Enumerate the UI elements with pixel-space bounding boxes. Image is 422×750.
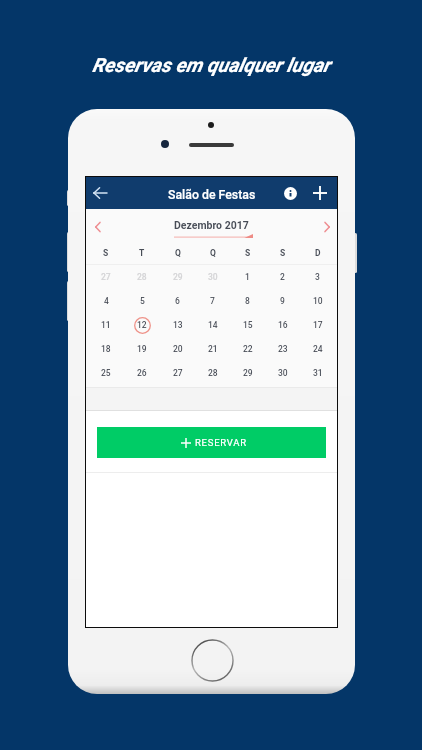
staticText: Salão de Festas — [168, 188, 256, 202]
button[interactable]: Previous month — [88, 217, 108, 237]
staticText: 13 — [173, 320, 183, 330]
staticText: 22 — [243, 344, 253, 354]
button[interactable]: 16 — [265, 313, 300, 337]
button[interactable]: 30 — [265, 361, 300, 385]
staticText: Dezembro 2017 — [174, 219, 249, 231]
button[interactable]: 3 — [300, 265, 335, 289]
button[interactable]: 24 — [300, 337, 335, 361]
staticText: 4 — [104, 296, 109, 306]
button[interactable]: Next month — [317, 217, 337, 237]
staticText: 18 — [101, 344, 111, 354]
button[interactable]: 1 — [230, 265, 265, 289]
button[interactable]: 6 — [160, 289, 195, 313]
staticText: Q — [175, 248, 181, 258]
button[interactable]: 15 — [230, 313, 265, 337]
staticText: 14 — [208, 320, 218, 330]
button[interactable]: 7 — [195, 289, 230, 313]
staticText: 6 — [175, 296, 180, 306]
button[interactable]: 29 — [230, 361, 265, 385]
button[interactable]: 20 — [160, 337, 195, 361]
button[interactable]: 9 — [265, 289, 300, 313]
staticText: 16 — [278, 320, 288, 330]
button[interactable]: 5 — [124, 289, 160, 313]
button[interactable]: 25 — [88, 361, 124, 385]
button[interactable]: 29 — [160, 265, 195, 289]
button[interactable]: 27 — [160, 361, 195, 385]
staticText: T — [139, 248, 145, 258]
button[interactable]: Add reservation — [309, 182, 331, 204]
staticText: 31 — [313, 368, 323, 378]
staticText: S — [280, 248, 286, 258]
button[interactable]: 21 — [195, 337, 230, 361]
staticText: 1 — [245, 272, 250, 282]
staticText: 25 — [101, 368, 111, 378]
staticText: 17 — [313, 320, 323, 330]
staticText: 7 — [210, 296, 215, 306]
button[interactable]: 17 — [300, 313, 335, 337]
staticText: 23 — [278, 344, 288, 354]
staticText: D — [315, 248, 321, 258]
button[interactable]: 14 — [195, 313, 230, 337]
button[interactable]: 28 — [195, 361, 230, 385]
staticText: 11 — [101, 320, 111, 330]
staticText: Reservas em qualquer lugar — [92, 54, 330, 77]
staticText: 29 — [173, 272, 183, 282]
staticText: 20 — [173, 344, 183, 354]
button[interactable]: 30 — [195, 265, 230, 289]
staticText: 15 — [243, 320, 253, 330]
staticText: RESERVAR — [195, 437, 247, 448]
staticText: S — [245, 248, 251, 258]
button[interactable]: 19 — [124, 337, 160, 361]
staticText: 2 — [280, 272, 285, 282]
staticText: 19 — [137, 344, 147, 354]
button[interactable]: 10 — [300, 289, 335, 313]
staticText: 27 — [173, 368, 183, 378]
staticText: 5 — [140, 296, 145, 306]
staticText: 3 — [315, 272, 320, 282]
button[interactable]: Back — [89, 182, 111, 204]
button[interactable]: 12 — [124, 313, 160, 337]
button[interactable]: 11 — [88, 313, 124, 337]
button[interactable]: 18 — [88, 337, 124, 361]
staticText: 28 — [208, 368, 218, 378]
staticText: 29 — [243, 368, 253, 378]
button[interactable]: RESERVAR — [97, 427, 326, 458]
button[interactable]: 27 — [88, 265, 124, 289]
staticText: 10 — [313, 296, 323, 306]
button[interactable]: 2 — [265, 265, 300, 289]
staticText: 27 — [101, 272, 111, 282]
staticText: 26 — [137, 368, 147, 378]
staticText: 9 — [280, 296, 285, 306]
button[interactable]: 31 — [300, 361, 335, 385]
staticText: 30 — [208, 272, 218, 282]
button[interactable]: 28 — [124, 265, 160, 289]
staticText: 21 — [208, 344, 218, 354]
button[interactable]: 4 — [88, 289, 124, 313]
button[interactable]: 8 — [230, 289, 265, 313]
staticText: 24 — [313, 344, 323, 354]
staticText: 12 — [137, 320, 147, 330]
staticText: 30 — [278, 368, 288, 378]
button[interactable]: Information — [279, 182, 301, 204]
button[interactable]: 13 — [160, 313, 195, 337]
staticText: Q — [210, 248, 216, 258]
button[interactable]: 26 — [124, 361, 160, 385]
button[interactable]: 23 — [265, 337, 300, 361]
staticText: 8 — [245, 296, 250, 306]
staticText: S — [103, 248, 109, 258]
staticText: 28 — [137, 272, 147, 282]
button[interactable]: 22 — [230, 337, 265, 361]
